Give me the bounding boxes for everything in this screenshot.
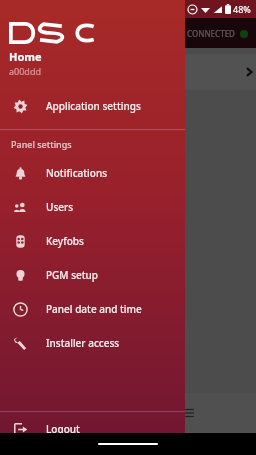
- other: PGM setup: [13, 268, 28, 283]
- staticText: Installer access: [46, 336, 120, 350]
- button[interactable]: Keyfobs: [0, 224, 185, 258]
- staticText: Logout: [46, 422, 80, 436]
- staticText: a00ddd: [9, 65, 41, 77]
- other: List: [121, 406, 135, 420]
- button[interactable]: Logout: [0, 412, 185, 446]
- button[interactable]: Application settings: [0, 89, 185, 123]
- other: Installer access: [13, 336, 28, 351]
- staticText: Panel date and time: [46, 302, 142, 316]
- staticText: Panel settings: [11, 138, 72, 150]
- staticText: Keyfobs: [46, 234, 84, 248]
- other: Application settings: [13, 99, 28, 114]
- staticText: PGM setup: [46, 268, 99, 282]
- button[interactable]: Installer access: [0, 326, 185, 360]
- staticText: Users: [46, 200, 74, 214]
- staticText: Notifications: [46, 166, 108, 180]
- other: Panel date and time: [13, 302, 28, 317]
- staticText: 48%: [233, 3, 251, 15]
- other: Keyfobs: [13, 234, 28, 249]
- other: List: [62, 406, 76, 420]
- other: Logout: [13, 422, 28, 437]
- staticText: Home: [9, 49, 42, 64]
- button[interactable]: Notifications: [0, 156, 185, 190]
- staticText: CONNECTED: [187, 28, 235, 39]
- button[interactable]: PGM setup: [0, 258, 185, 292]
- other: Notifications: [13, 166, 28, 181]
- button[interactable]: Users: [0, 190, 185, 224]
- other: Users: [13, 200, 28, 215]
- button[interactable]: Panel date and time: [0, 292, 185, 326]
- staticText: Application settings: [46, 99, 141, 113]
- other: List: [181, 406, 195, 420]
